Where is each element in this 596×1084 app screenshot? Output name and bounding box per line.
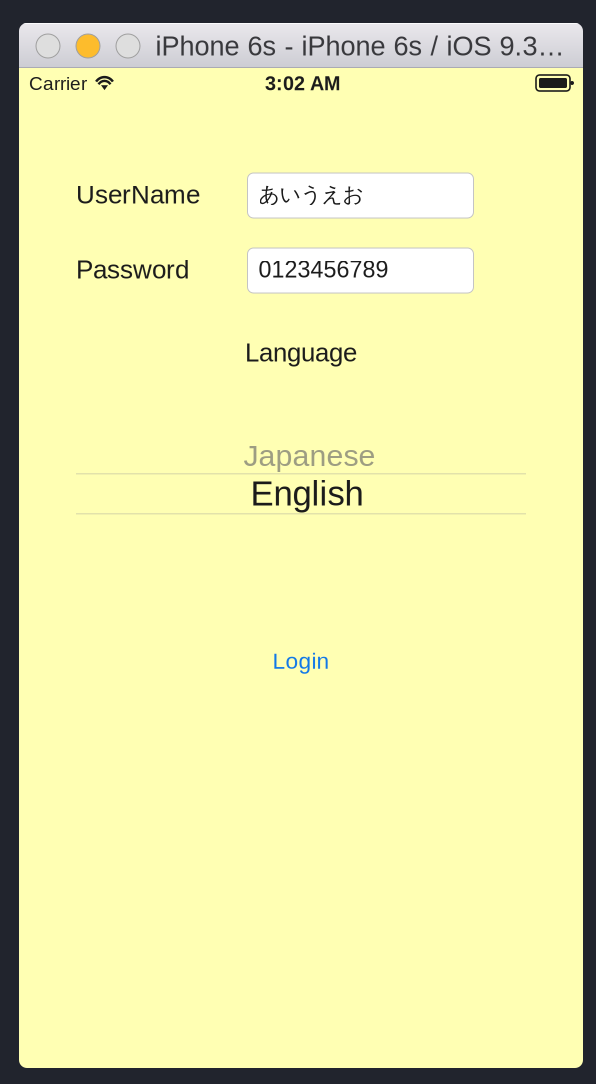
staticText: Language bbox=[245, 338, 357, 367]
staticText: Japanese bbox=[243, 439, 375, 472]
staticText: Login bbox=[272, 648, 329, 674]
button[interactable]: Zoom bbox=[116, 34, 140, 58]
staticText: UserName bbox=[76, 180, 200, 209]
staticText: 3:02 AM bbox=[265, 72, 340, 94]
staticText: English bbox=[250, 474, 363, 513]
staticText: Password bbox=[76, 255, 189, 284]
button[interactable]: Login bbox=[256, 644, 346, 678]
button[interactable]: Minimise bbox=[76, 34, 100, 58]
staticText: Carrier bbox=[29, 73, 87, 94]
staticText: あいうえお bbox=[258, 181, 363, 208]
button[interactable]: Close bbox=[36, 34, 60, 58]
button[interactable]: 0123456789 bbox=[247, 248, 473, 293]
button[interactable]: あいうえお bbox=[247, 173, 473, 218]
staticText: iPhone 6s - iPhone 6s / iOS 9.3… bbox=[155, 31, 564, 61]
staticText: 0123456789 bbox=[258, 256, 388, 282]
